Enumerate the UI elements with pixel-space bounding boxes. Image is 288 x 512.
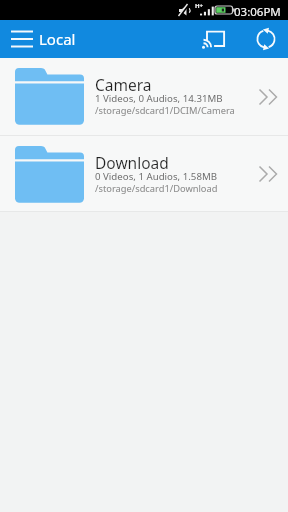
staticText: /storage/sdcard1/Download — [95, 182, 218, 195]
button[interactable] — [249, 20, 283, 58]
button[interactable]: Local — [0, 20, 76, 58]
staticText: /storage/sdcard1/DCIM/Camera — [95, 104, 235, 117]
staticText: Local — [39, 29, 76, 49]
button[interactable]: Download — [0, 136, 288, 211]
button[interactable]: Camera — [0, 58, 288, 135]
staticText: Download — [95, 152, 169, 173]
button[interactable] — [196, 20, 230, 58]
staticText: H+ — [195, 2, 204, 10]
staticText: 0 Videos, 1 Audios, 1.58MB — [95, 170, 218, 183]
staticText: 1 Videos, 0 Audios, 14.31MB — [95, 92, 223, 105]
staticText: 03:06PM — [234, 4, 281, 20]
staticText: Camera — [95, 74, 152, 95]
